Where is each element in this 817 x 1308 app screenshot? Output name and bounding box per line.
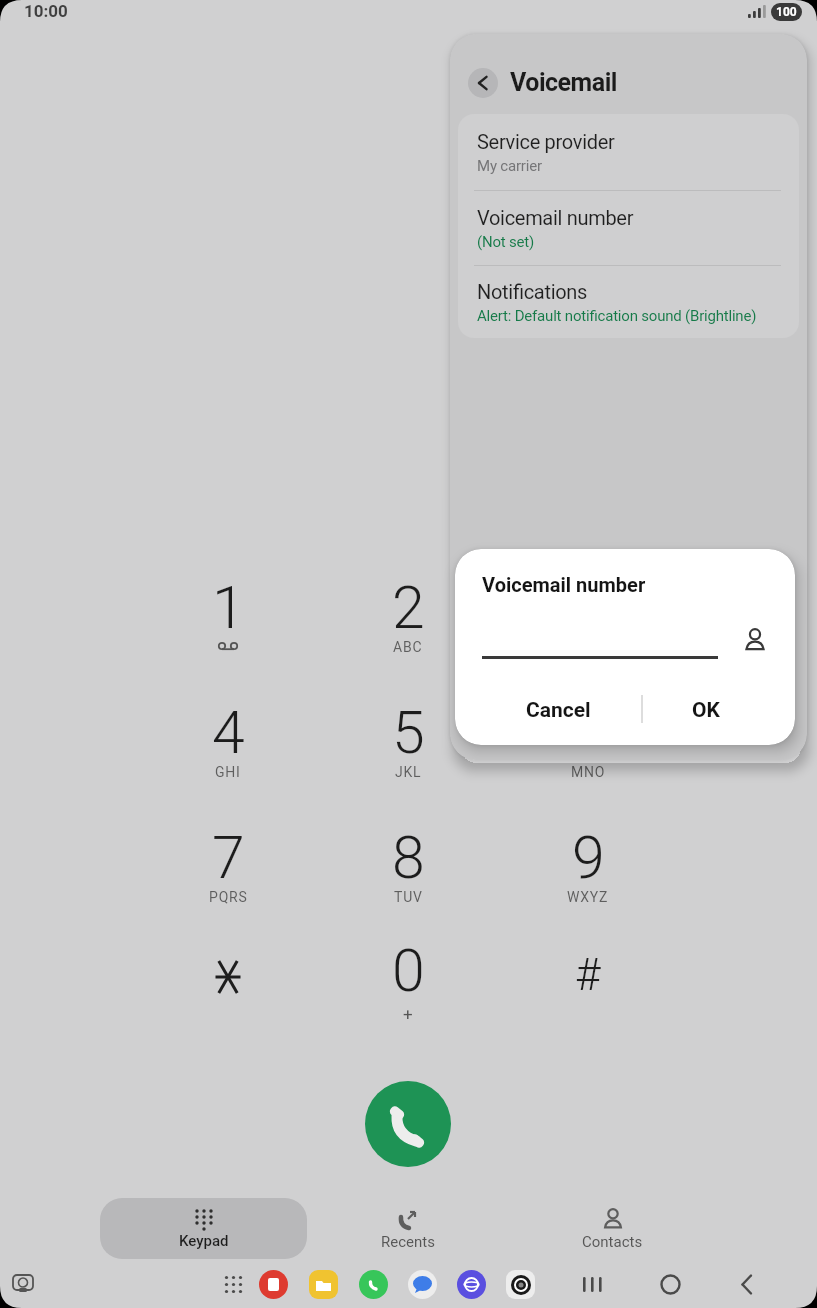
staticText: # <box>575 949 601 1001</box>
staticText: 8 <box>392 823 425 881</box>
staticText: TUV <box>394 889 423 905</box>
button[interactable]: 1 <box>148 573 308 631</box>
button[interactable] <box>741 1275 753 1294</box>
button[interactable] <box>742 627 768 653</box>
button[interactable]: 8 <box>328 823 488 881</box>
staticText: 100 <box>776 5 797 19</box>
button[interactable] <box>660 1274 681 1295</box>
staticText: + <box>403 1004 413 1024</box>
staticText: My carrier <box>477 157 542 175</box>
button[interactable] <box>468 68 498 98</box>
button[interactable]: 2 <box>328 573 488 631</box>
button[interactable]: # <box>508 944 668 1006</box>
staticText: 1 <box>212 573 245 631</box>
button[interactable]: 5 <box>328 698 488 756</box>
button[interactable]: 6 <box>508 698 668 756</box>
staticText: 0 <box>392 936 425 994</box>
button[interactable]: 3 <box>508 573 668 631</box>
staticText: 3 <box>572 573 605 631</box>
button[interactable]: Notifications <box>458 266 799 338</box>
staticText: WXYZ <box>567 889 609 905</box>
staticText: MNO <box>571 764 606 780</box>
button[interactable] <box>583 1277 603 1292</box>
button[interactable] <box>457 1270 486 1299</box>
button[interactable] <box>365 1081 451 1167</box>
button[interactable]: 4 <box>148 698 308 756</box>
staticText: 7 <box>212 823 245 881</box>
staticText: OK <box>692 698 720 723</box>
staticText: Keypad <box>179 1232 229 1250</box>
button[interactable]: Service provider <box>458 114 799 190</box>
staticText: Alert: Default notification sound (Brigh… <box>477 307 757 325</box>
button[interactable]: 9 <box>508 823 668 881</box>
staticText: ABC <box>393 639 423 655</box>
button[interactable]: Voicemail number <box>458 191 799 265</box>
staticText: Voicemail <box>510 68 617 97</box>
button[interactable]: Keypad <box>100 1198 307 1259</box>
staticText: 10:00 <box>24 1 68 21</box>
staticText: 6 <box>572 698 605 756</box>
button[interactable] <box>309 1270 338 1299</box>
button[interactable]: Cancel <box>485 689 631 731</box>
button[interactable]: Contacts <box>542 1198 682 1259</box>
button[interactable] <box>408 1270 437 1299</box>
staticText: Contacts <box>582 1233 643 1251</box>
button[interactable]: 7 <box>148 823 308 881</box>
staticText: (Not set) <box>477 233 535 251</box>
button[interactable] <box>259 1270 288 1299</box>
button[interactable]: 0 <box>328 936 488 994</box>
button[interactable] <box>359 1270 388 1299</box>
staticText: Voicemail number <box>477 206 634 229</box>
staticText: 5 <box>392 698 425 756</box>
staticText: Cancel <box>526 698 591 723</box>
button[interactable] <box>214 959 242 995</box>
staticText: PQRS <box>209 889 248 905</box>
staticText: Voicemail number <box>482 573 646 596</box>
button[interactable]: Recents <box>338 1198 478 1259</box>
staticText: JKL <box>395 764 422 780</box>
button[interactable] <box>506 1270 535 1299</box>
staticText: Service provider <box>477 130 615 153</box>
staticText: GHI <box>215 764 241 780</box>
staticText: 9 <box>572 823 605 881</box>
staticText: 4 <box>212 698 245 756</box>
staticText: Notifications <box>477 280 588 303</box>
staticText: Recents <box>381 1233 435 1251</box>
button[interactable]: OK <box>642 689 770 731</box>
staticText: 2 <box>392 573 425 631</box>
